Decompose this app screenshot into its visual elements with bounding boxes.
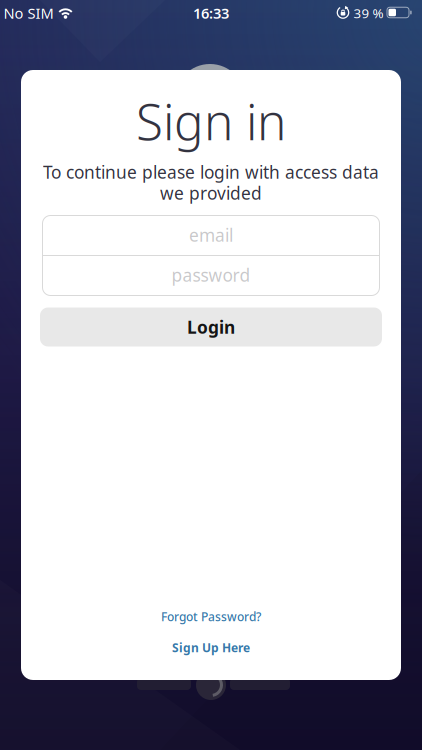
button[interactable]: email	[43, 215, 379, 254]
staticText: 39 %	[353, 4, 383, 22]
button[interactable]: Sign Up Here	[164, 635, 258, 659]
button[interactable]: Login	[40, 307, 382, 346]
staticText: password	[171, 263, 250, 286]
staticText: Forgot Password?	[161, 608, 261, 624]
staticText: Sign Up Here	[172, 639, 250, 655]
staticText: Sign in	[136, 88, 286, 154]
staticText: No SIM	[3, 3, 53, 23]
button[interactable]: Forgot Password?	[153, 604, 269, 628]
staticText: 16:33	[193, 3, 229, 23]
staticText: Login	[187, 315, 235, 338]
staticText: we provided	[160, 181, 262, 204]
button[interactable]: password	[43, 255, 379, 294]
staticText: To continue please login with access dat…	[43, 160, 379, 183]
staticText: email	[189, 223, 233, 246]
